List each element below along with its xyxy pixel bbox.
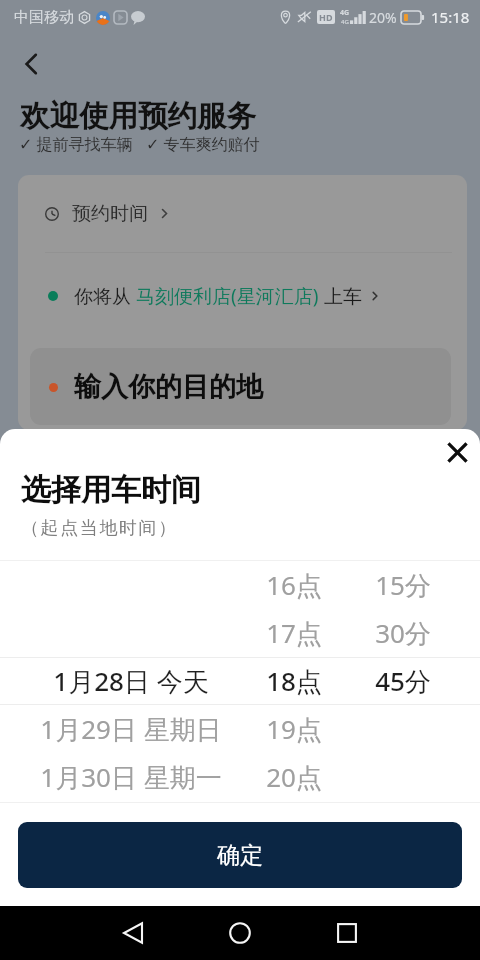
staticText: 20点: [262, 759, 326, 795]
staticText: 上车: [319, 283, 362, 309]
staticText: 选择用车时间: [21, 471, 201, 509]
button[interactable]: 你将从: [48, 253, 467, 338]
staticText: 欢迎使用预约服务: [20, 98, 256, 135]
staticText: 20%: [369, 8, 397, 27]
staticText: ✓ 提前寻找车辆: [19, 133, 133, 155]
staticText: 1月30日 星期一: [0, 759, 262, 795]
staticText: 4G: [340, 8, 350, 18]
staticText: 1月28日 今天: [0, 663, 262, 699]
button[interactable]: 1月28日 今天: [0, 657, 480, 705]
staticText: （起点当地时间）: [21, 517, 178, 540]
staticText: 16点: [262, 567, 326, 603]
button[interactable]: 输入你的目的地: [30, 348, 451, 425]
staticText: 确定: [217, 841, 263, 870]
button[interactable]: 预约时间: [45, 175, 467, 252]
staticText: HD: [319, 11, 333, 23]
button[interactable]: 16点: [0, 561, 480, 609]
staticText: 1月29日 星期日: [0, 711, 262, 747]
staticText: 输入你的目的地: [74, 370, 263, 404]
button[interactable]: Home: [186, 906, 293, 960]
button[interactable]: Close: [437, 432, 477, 472]
staticText: 中国移动: [14, 8, 74, 27]
staticText: 30分: [326, 615, 480, 651]
staticText: 马刻便利店(星河汇店): [136, 283, 319, 309]
staticText: 18点: [262, 663, 326, 699]
button[interactable]: 1月30日 星期一: [0, 753, 480, 801]
staticText: ✓ 专车爽约赔付: [146, 133, 260, 155]
button[interactable]: Back: [11, 44, 51, 84]
staticText: 15:18: [431, 7, 470, 27]
staticText: 19点: [262, 711, 326, 747]
staticText: 17点: [262, 615, 326, 651]
staticText: 你将从: [74, 283, 136, 309]
button[interactable]: 1月29日 星期日: [0, 705, 480, 753]
staticText: 4G: [341, 18, 349, 26]
staticText: 45分: [326, 663, 480, 699]
staticText: 预约时间: [72, 202, 148, 226]
button[interactable]: 确定: [18, 822, 462, 888]
staticText: 15分: [326, 567, 480, 603]
button[interactable]: Recents: [293, 906, 400, 960]
button[interactable]: Back: [80, 906, 186, 960]
button[interactable]: 17点: [0, 609, 480, 657]
